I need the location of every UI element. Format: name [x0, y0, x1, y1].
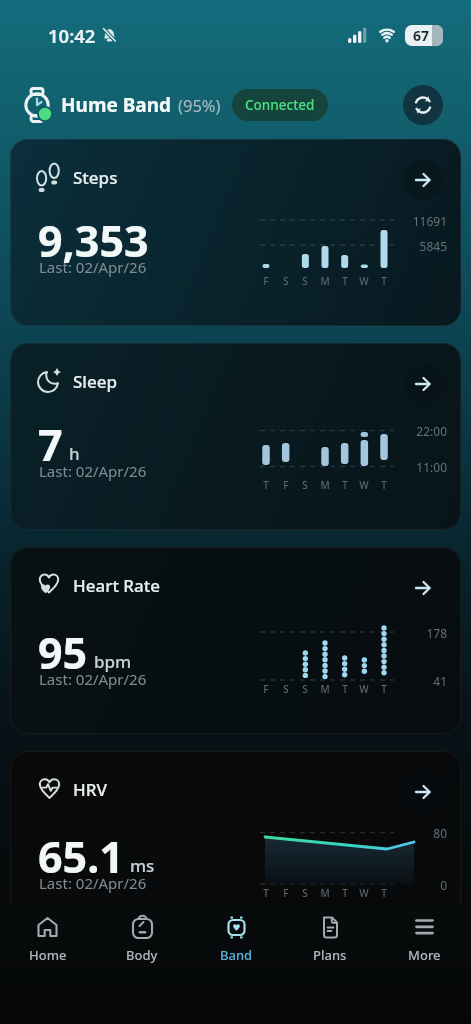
button[interactable]: Home [0, 914, 95, 964]
staticText: 11:00 [416, 459, 447, 475]
staticText: F [283, 886, 289, 900]
staticText: S [302, 274, 308, 288]
button[interactable]: Sleep [10, 343, 461, 530]
staticText: Plans [313, 946, 347, 964]
button[interactable]: Connected [232, 89, 328, 121]
staticText: 178 [426, 625, 447, 641]
staticText: 22:00 [416, 423, 447, 439]
staticText: F [263, 274, 269, 288]
staticText: 65.1 [38, 827, 124, 886]
button[interactable] [403, 364, 443, 404]
staticText: S [283, 274, 289, 288]
staticText: 5845 [419, 238, 447, 254]
button[interactable]: Band [189, 914, 283, 964]
staticText: Last: 02/Apr/26 [39, 873, 147, 893]
staticText: 11691 [412, 213, 447, 229]
staticText: 10:42 [48, 23, 96, 48]
staticText: 0 [440, 877, 447, 893]
staticText: T [263, 478, 269, 492]
staticText: bpm [94, 650, 132, 673]
staticText: M [320, 478, 330, 492]
staticText: F [263, 682, 269, 696]
staticText: T [381, 886, 387, 900]
button[interactable]: Steps [10, 139, 461, 326]
staticText: S [283, 682, 289, 696]
staticText: W [359, 886, 369, 900]
staticText: W [359, 478, 369, 492]
staticText: Steps [73, 166, 118, 189]
button[interactable] [403, 160, 443, 200]
staticText: S [302, 682, 308, 696]
staticText: T [342, 682, 348, 696]
staticText: T [342, 886, 348, 900]
staticText: ms [130, 854, 155, 877]
staticText: 95 [38, 623, 88, 682]
staticText: 67 [413, 26, 430, 45]
staticText: Heart Rate [73, 574, 161, 597]
staticText: T [381, 274, 387, 288]
staticText: M [320, 274, 330, 288]
staticText: Connected [245, 96, 315, 114]
staticText: M [320, 886, 330, 900]
button[interactable] [403, 772, 443, 812]
staticText: F [283, 478, 289, 492]
button[interactable]: Plans [283, 914, 377, 964]
staticText: Body [126, 946, 158, 964]
staticText: T [342, 274, 348, 288]
staticText: (95%) [178, 94, 221, 116]
staticText: More [408, 946, 441, 964]
staticText: Last: 02/Apr/26 [39, 669, 147, 689]
staticText: M [320, 682, 330, 696]
staticText: 80 [433, 825, 447, 841]
staticText: T [263, 886, 269, 900]
staticText: 7 [38, 415, 63, 474]
button[interactable]: Heart Rate [10, 547, 461, 734]
staticText: T [342, 478, 348, 492]
staticText: W [359, 274, 369, 288]
staticText: W [359, 682, 369, 696]
staticText: Last: 02/Apr/26 [39, 257, 147, 277]
staticText: h [69, 442, 80, 465]
button[interactable] [403, 85, 443, 125]
staticText: 41 [433, 673, 447, 689]
staticText: S [302, 886, 308, 900]
staticText: Band [220, 946, 253, 964]
button[interactable]: More [377, 914, 471, 964]
staticText: T [381, 682, 387, 696]
staticText: T [381, 478, 387, 492]
button[interactable]: HRV [10, 751, 461, 938]
staticText: Home [29, 946, 67, 964]
staticText: 9,353 [38, 211, 149, 270]
staticText: Last: 02/Apr/26 [39, 461, 147, 481]
staticText: Hume Band [61, 92, 172, 118]
staticText: S [302, 478, 308, 492]
button[interactable]: Body [95, 914, 189, 964]
staticText: Sleep [73, 370, 117, 393]
button[interactable] [403, 568, 443, 608]
staticText: HRV [73, 778, 107, 801]
